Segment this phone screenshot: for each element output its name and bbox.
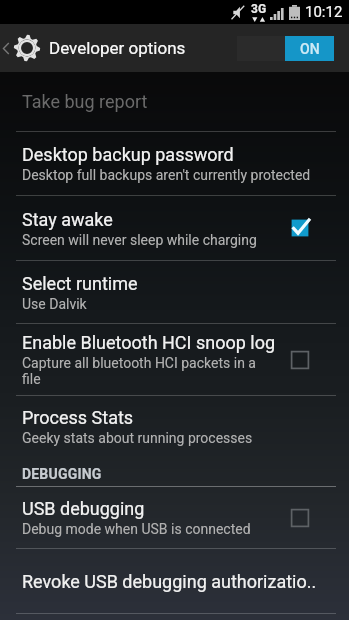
- staticText: Developer options: [49, 38, 186, 58]
- staticText: Capture all bluetooth HCI packets in a f…: [22, 355, 257, 387]
- button[interactable]: Enable Bluetooth HCI snoop log: [0, 324, 349, 395]
- staticText: USB debugging: [22, 498, 145, 519]
- button[interactable]: Developer options toggle: [237, 36, 349, 61]
- button[interactable]: Desktop backup password: [0, 132, 349, 195]
- staticText: 3G: [251, 2, 267, 16]
- staticText: Revoke USB debugging authorizatio..: [22, 571, 317, 592]
- staticText: Process Stats: [22, 407, 134, 428]
- button[interactable]: Toggle setting: [288, 348, 312, 372]
- staticText: Desktop full backups aren't currently pr…: [22, 167, 311, 183]
- button[interactable]: USB debugging: [0, 487, 349, 548]
- staticText: Geeky stats about running processes: [22, 430, 253, 446]
- staticText: Select runtime: [22, 273, 138, 294]
- staticText: ON: [300, 41, 320, 57]
- staticText: Debug mode when USB is connected: [22, 521, 251, 537]
- button[interactable]: Revoke USB debugging authorizatio..: [0, 549, 349, 613]
- staticText: Stay awake: [22, 209, 113, 230]
- staticText: DEBUGGING: [22, 466, 102, 482]
- button[interactable]: Take bug report: [0, 72, 349, 131]
- staticText: Take bug report: [22, 91, 148, 112]
- button[interactable]: Toggle setting: [288, 506, 312, 530]
- staticText: Enable Bluetooth HCI snoop log: [22, 332, 276, 353]
- staticText: Use Dalvik: [22, 296, 87, 312]
- staticText: 10:12: [305, 3, 343, 21]
- button[interactable]: Select runtime: [0, 261, 349, 323]
- staticText: Screen will never sleep while charging: [22, 232, 257, 248]
- button[interactable]: Navigate up: [0, 34, 43, 62]
- button[interactable]: Process Stats: [0, 396, 349, 456]
- button[interactable]: Stay awake: [0, 196, 349, 260]
- button[interactable]: Toggle setting: [288, 216, 312, 240]
- staticText: Desktop backup password: [22, 144, 234, 165]
